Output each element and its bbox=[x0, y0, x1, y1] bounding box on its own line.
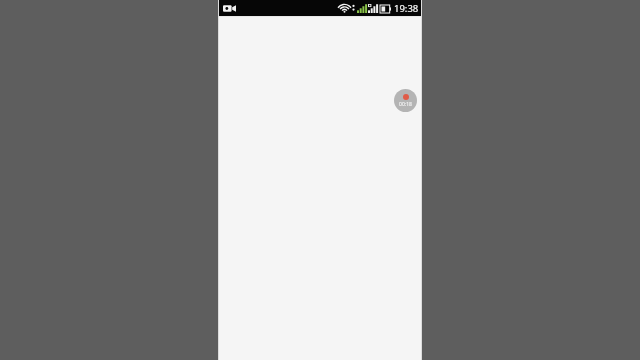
button[interactable]: Screen recorder controls bbox=[394, 89, 417, 112]
other: Screen recording bbox=[221, 2, 237, 14]
staticText: 19:38 bbox=[394, 2, 419, 15]
staticText: 00:18 bbox=[399, 101, 412, 108]
